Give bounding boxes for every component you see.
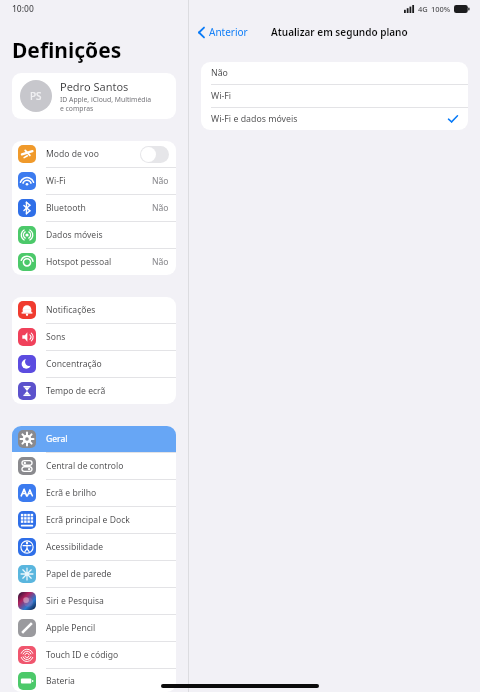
button[interactable]: Bateria	[12, 669, 176, 692]
staticText: Geral	[46, 433, 169, 445]
button[interactable]: Bluetooth	[12, 195, 176, 221]
staticText: Hotspot pessoal	[46, 256, 152, 268]
button[interactable]: Hotspot pessoal	[12, 249, 176, 275]
staticText: Pedro Santos	[60, 79, 129, 94]
staticText: Wi-Fi e dados móveis	[211, 113, 448, 125]
button[interactable]: Acessibilidade	[12, 534, 176, 560]
button[interactable]: Ecrã e brilho	[12, 480, 176, 506]
staticText: Acessibilidade	[46, 541, 169, 553]
staticText: Notificações	[46, 304, 169, 316]
staticText: Não	[211, 67, 458, 79]
staticText: Anterior	[209, 25, 248, 39]
staticText: Central de controlo	[46, 460, 169, 472]
staticText: Definições	[12, 36, 122, 65]
button[interactable]: Modo de voo	[140, 146, 169, 163]
staticText: Concentração	[46, 358, 169, 370]
button[interactable]: Wi-Fi	[201, 85, 468, 107]
staticText: Siri e Pesquisa	[46, 595, 169, 607]
staticText: Não	[152, 202, 169, 214]
button[interactable]: Dados móveis	[12, 222, 176, 248]
button[interactable]: Não	[201, 62, 468, 84]
staticText: Wi-Fi	[46, 175, 152, 187]
button[interactable]: Ecrã principal e Dock	[12, 507, 176, 533]
button[interactable]: Modo de voo	[12, 141, 176, 167]
staticText: Bluetooth	[46, 202, 152, 214]
staticText: Não	[152, 256, 169, 268]
staticText: Ecrã principal e Dock	[46, 514, 169, 526]
staticText: PS	[30, 89, 42, 103]
button[interactable]: PS	[12, 73, 176, 119]
button[interactable]: Geral	[12, 426, 176, 452]
button[interactable]: Papel de parede	[12, 561, 176, 587]
staticText: Apple Pencil	[46, 622, 169, 634]
staticText: Tempo de ecrã	[46, 385, 169, 397]
staticText: 100%	[431, 4, 451, 14]
button[interactable]: Sons	[12, 324, 176, 350]
button[interactable]: Concentração	[12, 351, 176, 377]
staticText: Touch ID e código	[46, 649, 169, 661]
staticText: Wi-Fi	[211, 90, 458, 102]
button[interactable]: Central de controlo	[12, 453, 176, 479]
staticText: Sons	[46, 331, 169, 343]
button[interactable]: Wi-Fi	[12, 168, 176, 194]
button[interactable]: Wi-Fi e dados móveis	[201, 108, 468, 130]
button[interactable]: Anterior	[197, 25, 248, 39]
staticText: Papel de parede	[46, 568, 169, 580]
staticText: ID Apple, iCloud, Multimédia e compras	[60, 95, 152, 113]
staticText: Não	[152, 175, 169, 187]
staticText: Ecrã e brilho	[46, 487, 169, 499]
button[interactable]: Siri e Pesquisa	[12, 588, 176, 614]
button[interactable]: Apple Pencil	[12, 615, 176, 641]
staticText: Atualizar em segundo plano	[271, 25, 408, 39]
button[interactable]: Touch ID e código	[12, 642, 176, 668]
button[interactable]: Tempo de ecrã	[12, 378, 176, 404]
button[interactable]: Notificações	[12, 297, 176, 323]
staticText: Bateria	[46, 675, 169, 687]
staticText: 10:00	[12, 3, 34, 15]
staticText: Modo de voo	[46, 148, 140, 160]
staticText: Dados móveis	[46, 229, 169, 241]
staticText: 4G	[418, 4, 428, 14]
